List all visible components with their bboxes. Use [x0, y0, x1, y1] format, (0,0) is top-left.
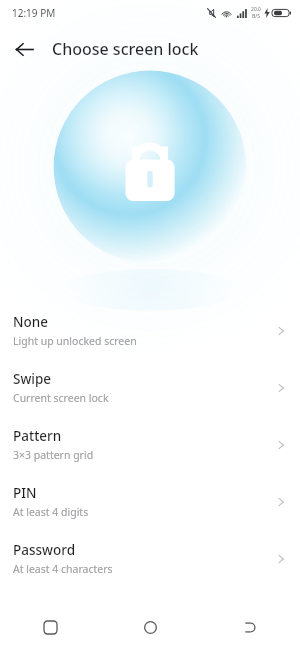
staticText: Light up unlocked screen: [13, 334, 137, 348]
staticText: Choose screen lock: [52, 38, 199, 60]
button[interactable]: Back: [8, 33, 40, 65]
staticText: At least 4 digits: [13, 505, 89, 519]
staticText: At least 4 characters: [13, 562, 113, 576]
staticText: Swipe: [13, 370, 52, 388]
button[interactable]: Recent apps: [0, 604, 100, 650]
staticText: 20.0: [251, 6, 261, 13]
staticText: Password: [13, 541, 76, 559]
staticText: B/S: [252, 13, 260, 20]
button[interactable]: Home: [100, 604, 200, 650]
button[interactable]: Back: [200, 604, 300, 650]
button[interactable]: None: [0, 302, 300, 359]
button[interactable]: Swipe: [0, 359, 300, 416]
staticText: 12:19 PM: [12, 6, 56, 20]
button[interactable]: Password: [0, 530, 300, 587]
staticText: Pattern: [13, 427, 62, 445]
button[interactable]: Pattern: [0, 416, 300, 473]
staticText: None: [13, 313, 48, 331]
staticText: 3×3 pattern grid: [13, 448, 94, 462]
staticText: Current screen lock: [13, 391, 109, 405]
staticText: PIN: [13, 484, 37, 502]
button[interactable]: PIN: [0, 473, 300, 530]
